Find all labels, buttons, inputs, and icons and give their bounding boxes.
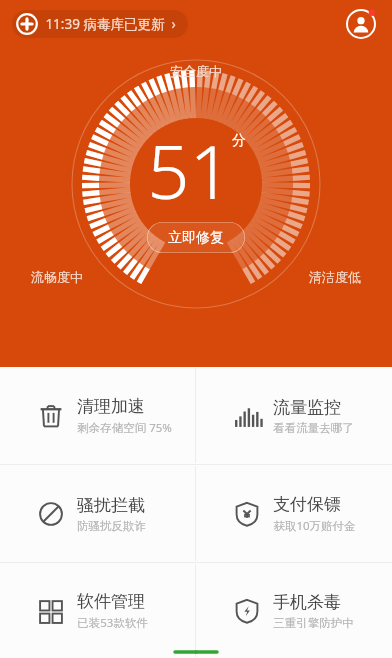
button[interactable]: 软件管理: [0, 563, 195, 658]
button[interactable]: 流量监控: [196, 367, 392, 464]
staticText: 安全度中: [170, 63, 222, 79]
staticText: 51: [147, 120, 232, 221]
staticText: 已装53款软件: [77, 615, 148, 631]
staticText: 三重引擎防护中: [273, 616, 354, 630]
staticText: 11:39 病毒库已更新 ›: [45, 15, 176, 33]
staticText: 立即修复: [168, 229, 224, 247]
staticText: 软件管理: [77, 591, 145, 612]
staticText: 支付保镖: [273, 494, 341, 515]
button[interactable]: 11:39 病毒库已更新 ›: [12, 10, 188, 38]
button[interactable]: 清理加速: [0, 367, 195, 464]
button[interactable]: 骚扰拦截: [0, 465, 195, 562]
staticText: 手机杀毒: [273, 592, 341, 613]
staticText: 流量监控: [273, 397, 341, 418]
staticText: 获取10万赔付金: [273, 518, 356, 534]
staticText: 分: [232, 132, 246, 150]
staticText: 流畅度中: [31, 269, 83, 285]
staticText: 清理加速: [77, 396, 145, 417]
staticText: 看看流量去哪了: [273, 421, 354, 435]
staticText: 清洁度低: [309, 269, 361, 285]
staticText: 防骚扰反欺诈: [77, 519, 146, 533]
button[interactable]: 支付保镖: [196, 465, 392, 562]
button[interactable]: Profile: [344, 7, 378, 41]
button[interactable]: 手机杀毒: [196, 563, 392, 658]
staticText: 剩余存储空间 75%: [77, 420, 172, 436]
staticText: 骚扰拦截: [77, 495, 145, 516]
button[interactable]: 立即修复: [147, 222, 245, 253]
